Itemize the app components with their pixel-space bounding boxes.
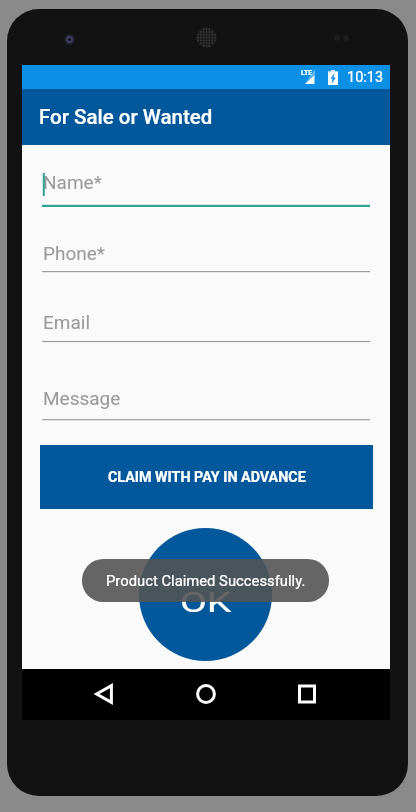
button[interactable]: CLAIM WITH PAY IN ADVANCE [40, 445, 373, 509]
staticText: For Sale or Wanted [39, 105, 213, 129]
staticText: Email [43, 311, 91, 333]
button[interactable]: Back [83, 673, 125, 715]
staticText: OK [180, 587, 232, 619]
staticText: Phone* [43, 242, 106, 264]
staticText: Message [43, 387, 121, 409]
staticText: CLAIM WITH PAY IN ADVANCE [108, 469, 306, 486]
button[interactable]: Email [42, 311, 370, 346]
staticText: Product Claimed Successfully. [106, 572, 306, 589]
button[interactable]: Home [185, 673, 227, 715]
button[interactable]: Name* [42, 171, 370, 210]
staticText: Name* [43, 171, 102, 193]
button[interactable]: Message [42, 387, 370, 424]
button[interactable]: Recent apps [286, 673, 328, 715]
staticText: LTE [301, 69, 313, 77]
staticText: 10:13 [347, 69, 384, 86]
button[interactable]: OK [139, 528, 272, 661]
button[interactable]: Phone* [42, 242, 370, 276]
